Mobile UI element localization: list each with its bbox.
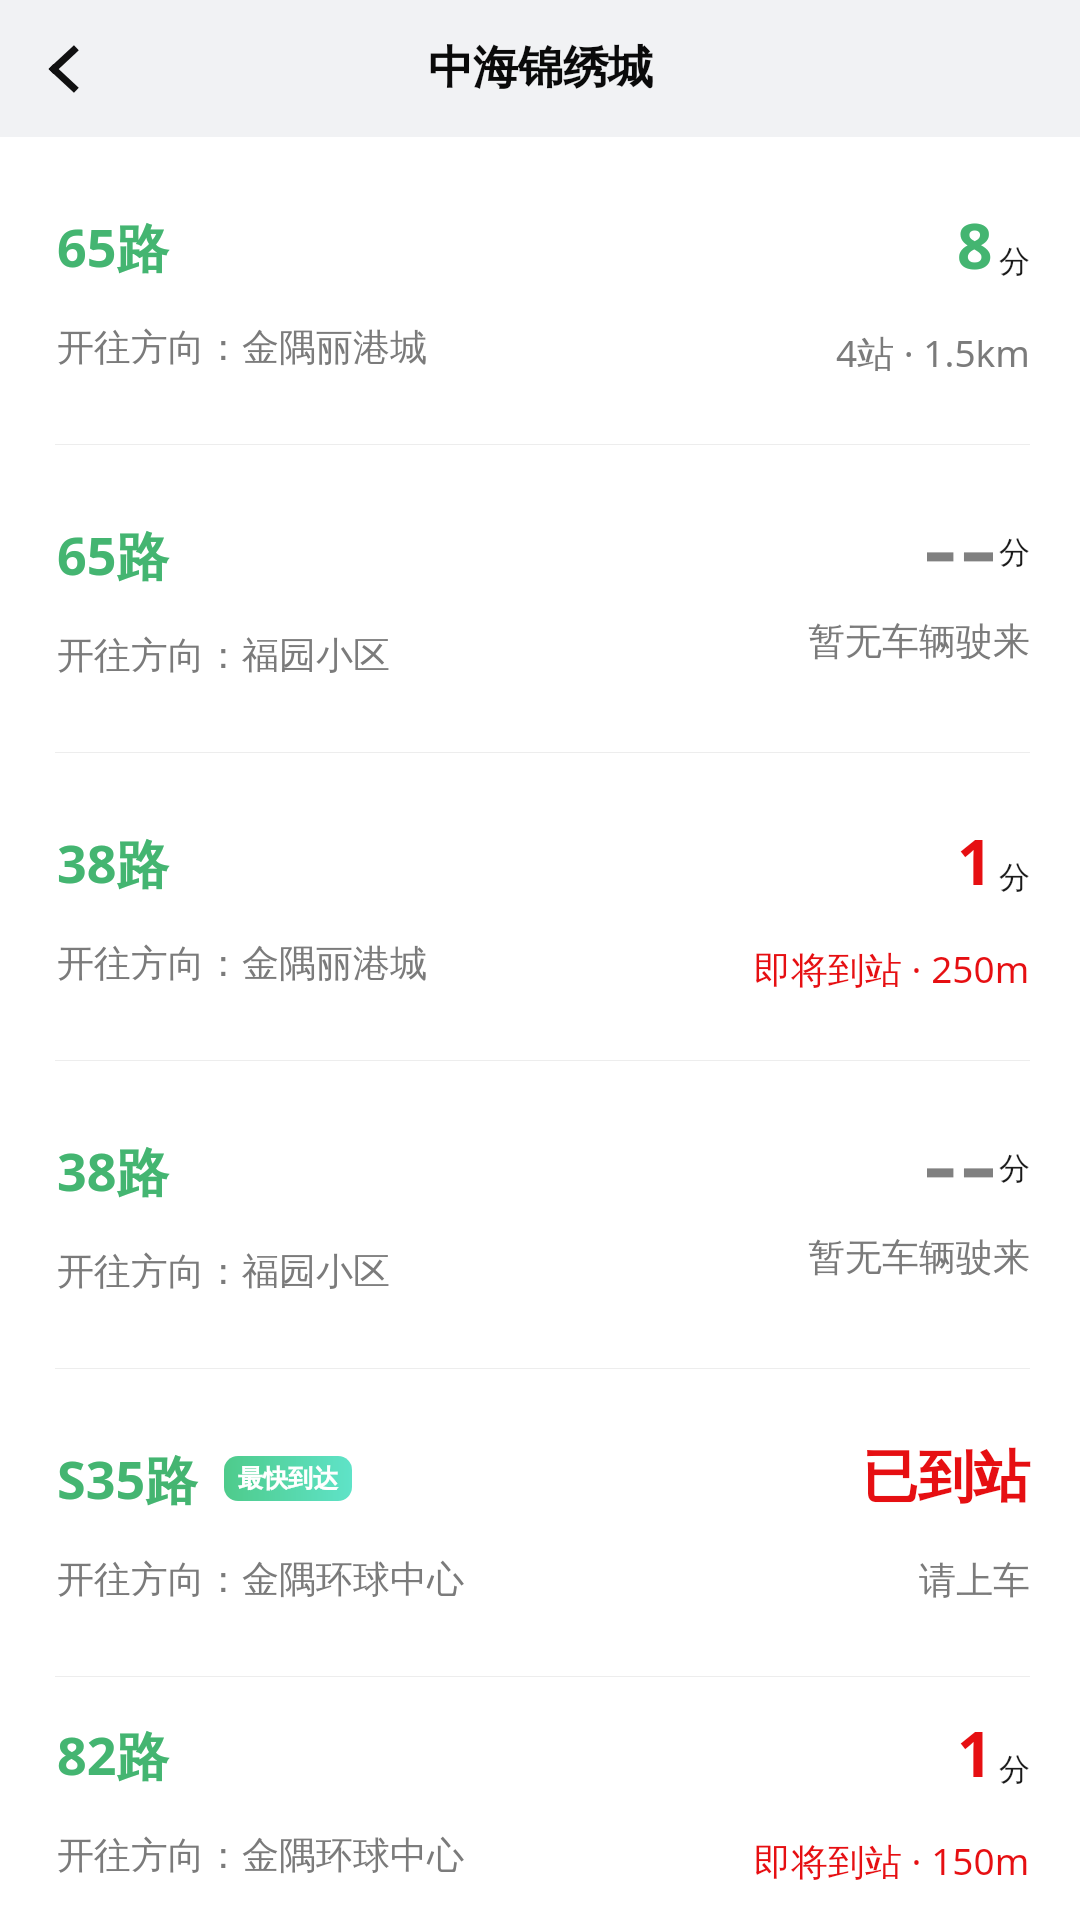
staticText: 分 — [999, 1149, 1030, 1188]
button[interactable]: 38路 — [0, 753, 1080, 1060]
staticText: 分 — [999, 858, 1030, 897]
button[interactable]: 65路 — [0, 137, 1080, 444]
staticText: 暂无车辆驶来 — [808, 1234, 1030, 1281]
staticText: S35路 — [57, 1443, 198, 1514]
staticText: 38路 — [57, 1135, 169, 1206]
staticText: 分 — [999, 533, 1030, 572]
staticText: 最快到达 — [238, 1463, 338, 1494]
staticText: 请上车 — [919, 1557, 1030, 1604]
staticText: 开往方向：福园小区 — [57, 632, 390, 679]
staticText: 分 — [999, 1750, 1030, 1789]
staticText: 8 — [957, 203, 993, 287]
staticText: 开往方向：金隅丽港城 — [57, 940, 427, 987]
button[interactable]: 65路 — [0, 445, 1080, 752]
button[interactable]: Back — [20, 24, 110, 114]
staticText: 1 — [957, 1711, 993, 1795]
staticText: 82路 — [57, 1719, 169, 1790]
button[interactable]: S35路 — [0, 1369, 1080, 1676]
staticText: 中海锦绣城 — [428, 40, 653, 97]
staticText: 开往方向：金隅环球中心 — [57, 1556, 464, 1603]
staticText: 4站 · 1.5km — [836, 327, 1030, 378]
staticText: 暂无车辆驶来 — [808, 618, 1030, 665]
button[interactable]: 38路 — [0, 1061, 1080, 1368]
button[interactable]: 82路 — [0, 1677, 1080, 1920]
staticText: 38路 — [57, 827, 169, 898]
staticText: 分 — [999, 242, 1030, 281]
staticText: 65路 — [57, 211, 169, 282]
staticText: 即将到站 · 250m — [754, 943, 1030, 994]
staticText: 即将到站 · 150m — [754, 1835, 1030, 1886]
staticText: 1 — [957, 819, 993, 903]
staticText: 开往方向：金隅环球中心 — [57, 1832, 464, 1879]
staticText: 65路 — [57, 519, 169, 590]
staticText: 已到站 — [862, 1442, 1030, 1513]
staticText: 开往方向：福园小区 — [57, 1248, 390, 1295]
staticText: 开往方向：金隅丽港城 — [57, 324, 427, 371]
